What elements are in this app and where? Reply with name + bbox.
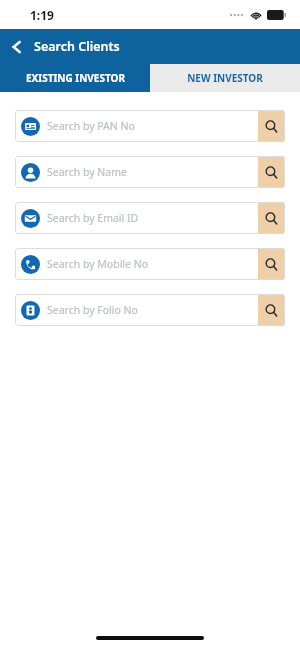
button[interactable]: Back: [0, 30, 34, 64]
button[interactable]: NEW INVESTOR: [150, 64, 300, 92]
button[interactable]: Search: [258, 202, 285, 234]
button[interactable]: Search: [258, 294, 285, 326]
staticText: Search by Name: [47, 165, 258, 179]
button[interactable]: Search: [258, 110, 285, 142]
staticText: Search by PAN No: [47, 119, 258, 133]
button[interactable]: Search by Mobile No: [15, 248, 285, 280]
staticText: EXISTING INVESTOR: [26, 71, 125, 85]
staticText: Search by Folio No: [47, 303, 258, 317]
button[interactable]: EXISTING INVESTOR: [0, 64, 150, 92]
button[interactable]: Search by Name: [15, 156, 285, 188]
button[interactable]: Search: [258, 248, 285, 280]
staticText: 1:19: [30, 7, 54, 23]
button[interactable]: Search by PAN No: [15, 110, 285, 142]
staticText: Search Clients: [34, 38, 120, 55]
staticText: NEW INVESTOR: [187, 71, 263, 85]
button[interactable]: Search by Email ID: [15, 202, 285, 234]
button[interactable]: Search: [258, 156, 285, 188]
button[interactable]: Search by Folio No: [15, 294, 285, 326]
staticText: Search by Email ID: [47, 211, 258, 225]
staticText: Search by Mobile No: [47, 257, 258, 271]
